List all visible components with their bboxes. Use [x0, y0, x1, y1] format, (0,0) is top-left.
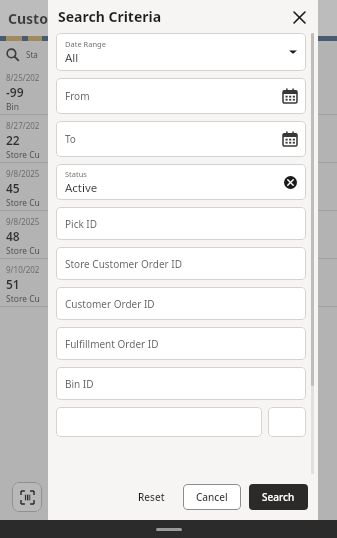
button[interactable]: From — [56, 78, 306, 114]
button[interactable] — [268, 407, 306, 437]
staticText: 48 — [6, 228, 20, 244]
button[interactable]: 8/27/202 — [0, 115, 337, 162]
staticText: Store Cu — [6, 197, 40, 209]
staticText: Cancel — [196, 490, 228, 504]
staticText: To — [65, 132, 76, 146]
staticText: Search — [262, 490, 295, 504]
button[interactable]: 9/8/2025 — [0, 163, 337, 210]
staticText: Bin — [6, 101, 19, 113]
staticText: 8/27/202 — [6, 120, 40, 131]
staticText: 45 — [6, 180, 20, 196]
button[interactable]: 9/8/2025 — [0, 211, 337, 258]
staticText: Status — [65, 169, 87, 179]
staticText: Search Criteria — [58, 7, 288, 26]
staticText: From — [65, 89, 90, 103]
button[interactable]: Scan barcode — [12, 482, 42, 512]
staticText: All — [65, 50, 79, 66]
staticText: 22 — [6, 132, 20, 148]
staticText: Active — [65, 180, 98, 196]
button[interactable]: 8/25/202 — [0, 67, 337, 114]
staticText: Fulfillment Order ID — [65, 337, 159, 351]
staticText: Store Customer Order ID — [65, 257, 182, 271]
button[interactable]: Date Range — [56, 33, 306, 71]
staticText: -99 — [6, 84, 24, 100]
button[interactable]: Fulfillment Order ID — [56, 327, 306, 360]
button[interactable]: Search — [249, 484, 308, 510]
staticText: Custo — [8, 9, 48, 28]
staticText: 9/8/2025 — [6, 216, 40, 227]
button[interactable]: Pick ID — [56, 207, 306, 240]
staticText: 9/10/202 — [6, 264, 40, 275]
staticText: Customer Order ID — [65, 297, 155, 311]
staticText: Reset — [138, 490, 165, 504]
staticText: 51 — [6, 276, 20, 292]
staticText: Store Cu — [6, 245, 40, 257]
staticText: Pick ID — [65, 217, 98, 231]
button[interactable]: Cancel — [183, 484, 241, 510]
button[interactable]: Bin ID — [56, 367, 306, 400]
button[interactable]: Store Customer Order ID — [56, 247, 306, 280]
button[interactable]: Status — [56, 164, 306, 200]
button[interactable]: Customer Order ID — [56, 287, 306, 320]
button[interactable]: To — [56, 121, 306, 157]
staticText: Date Range — [65, 39, 106, 49]
button[interactable]: Close — [288, 6, 310, 28]
staticText: Store Cu — [6, 149, 40, 161]
staticText: Store Cu — [6, 293, 40, 305]
button[interactable]: 9/10/202 — [0, 259, 337, 306]
staticText: Sta — [26, 49, 38, 60]
staticText: 8/25/202 — [6, 72, 40, 83]
staticText: Bin ID — [65, 377, 94, 391]
button[interactable]: Reset — [128, 484, 175, 510]
button[interactable] — [56, 407, 262, 437]
staticText: 9/8/2025 — [6, 168, 40, 179]
